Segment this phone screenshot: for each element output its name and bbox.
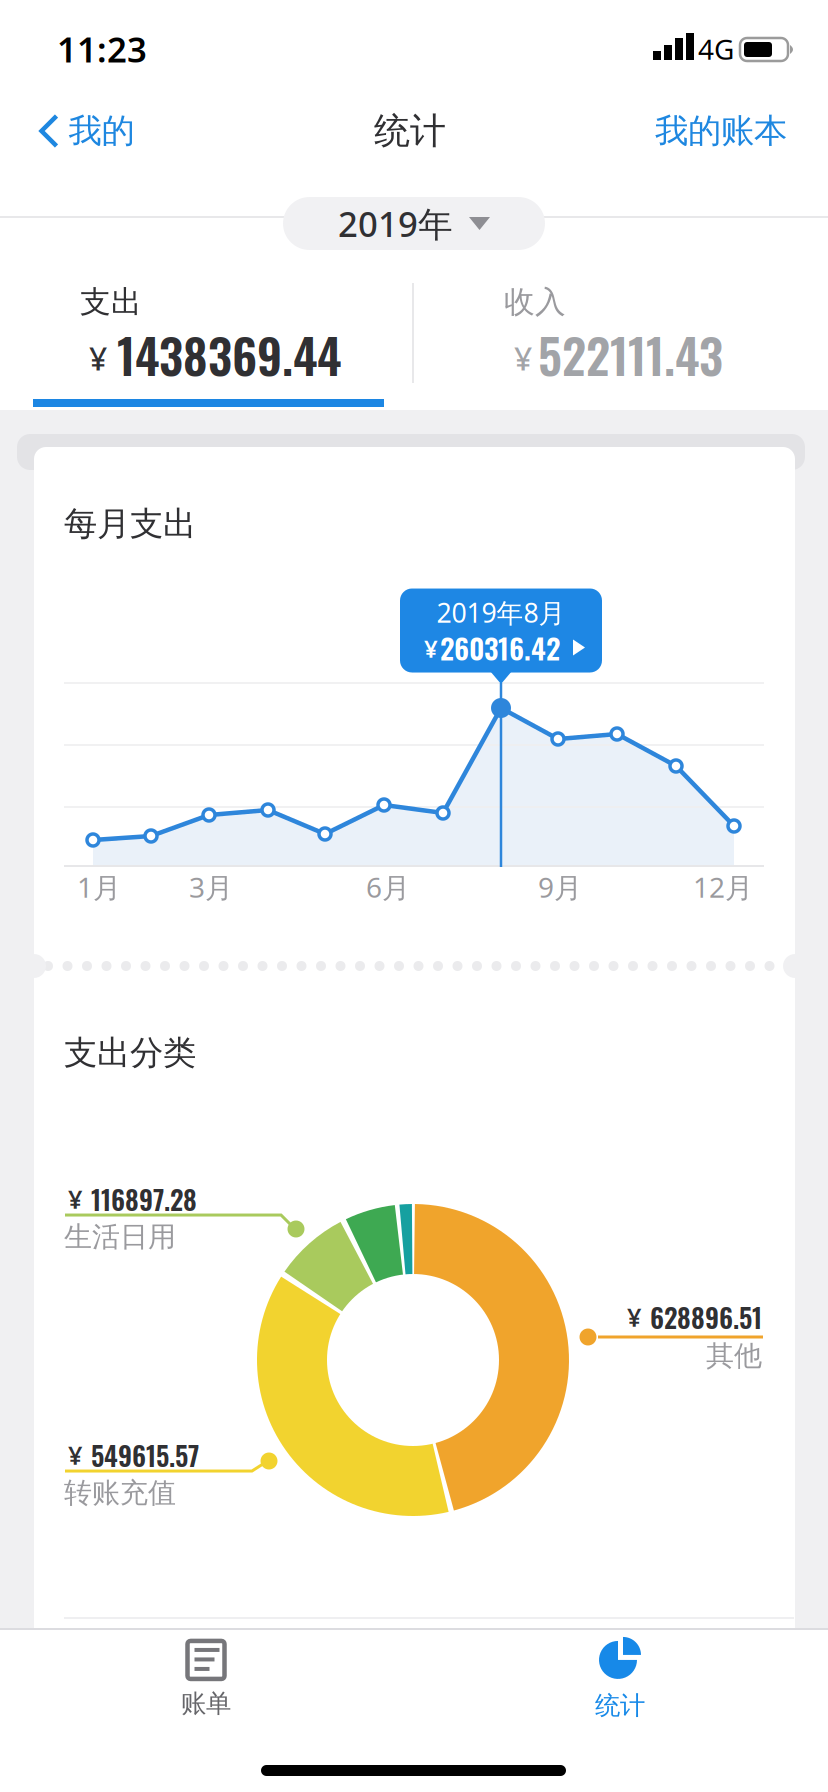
button[interactable] — [10, 267, 390, 407]
staticText: 我的账本 — [655, 110, 787, 151]
button[interactable]: 我的账本 — [655, 110, 787, 151]
staticText: ¥ — [424, 633, 438, 664]
staticText: 支出 — [80, 283, 142, 321]
staticText: 统计 — [374, 109, 446, 153]
button[interactable]: 账单 — [116, 1625, 296, 1735]
staticText: ¥ — [514, 337, 532, 379]
staticText: 2019年8月 — [436, 595, 565, 630]
staticText: 9月 — [538, 868, 582, 906]
staticText: 生活日用 — [64, 1220, 176, 1254]
staticText: 其他 — [706, 1339, 762, 1373]
staticText: ¥ — [68, 1438, 82, 1472]
staticText: ¥ — [627, 1300, 641, 1334]
button[interactable]: 2019年 — [283, 197, 545, 250]
staticText: 3月 — [189, 868, 233, 906]
button[interactable]: 我的 — [39, 110, 134, 151]
staticText: 260316.42 — [440, 626, 560, 669]
staticText: ¥ — [89, 337, 107, 379]
staticText: 628896.51 — [650, 1297, 762, 1337]
staticText: 549615.57 — [91, 1435, 199, 1475]
staticText: 我的 — [68, 110, 134, 151]
staticText: 收入 — [504, 283, 566, 321]
staticText: 12月 — [693, 868, 753, 906]
staticText: ¥ — [68, 1182, 82, 1216]
staticText: 116897.28 — [91, 1179, 197, 1219]
staticText: 11:23 — [57, 26, 147, 72]
staticText: 1月 — [77, 868, 121, 906]
staticText: 1438369.44 — [117, 319, 341, 390]
button[interactable]: 统计 — [530, 1625, 710, 1735]
staticText: 6月 — [366, 868, 410, 906]
staticText: 统计 — [595, 1690, 645, 1721]
staticText: 522111.43 — [538, 319, 723, 390]
staticText: 每月支出 — [64, 503, 196, 544]
staticText: 转账充值 — [64, 1476, 176, 1510]
button[interactable] — [435, 267, 815, 407]
staticText: 2019年 — [338, 200, 453, 246]
button[interactable]: 2019年8月 — [400, 588, 602, 672]
staticText: 账单 — [181, 1688, 231, 1719]
staticText: 4G — [698, 30, 734, 68]
staticText: 支出分类 — [64, 1032, 196, 1073]
